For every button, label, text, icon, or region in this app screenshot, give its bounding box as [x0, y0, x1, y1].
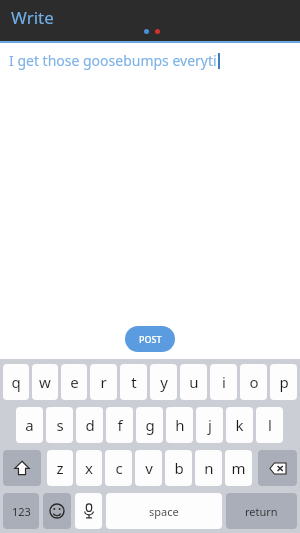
staticText: e — [70, 372, 79, 392]
staticText: o — [249, 372, 259, 392]
button[interactable]: o — [240, 364, 267, 400]
button[interactable]: POST — [125, 326, 175, 352]
button[interactable]: w — [32, 364, 58, 400]
button[interactable]: j — [196, 407, 223, 443]
staticText: r — [100, 372, 107, 392]
staticText: 123 — [12, 504, 31, 519]
staticText: b — [174, 458, 184, 478]
staticText: w — [39, 372, 51, 392]
button[interactable]: I get those goosebumps everyti — [9, 51, 300, 70]
staticText: h — [175, 415, 185, 435]
staticText: u — [189, 372, 199, 392]
button[interactable]: h — [166, 407, 193, 443]
button[interactable]: k — [226, 407, 253, 443]
button[interactable]: y — [150, 364, 177, 400]
button[interactable]: i — [210, 364, 237, 400]
button[interactable]: Backspace — [258, 450, 297, 486]
button[interactable]: t — [120, 364, 147, 400]
button[interactable]: m — [225, 450, 252, 486]
staticText: g — [145, 415, 155, 435]
staticText: POST — [139, 333, 162, 345]
staticText: d — [85, 415, 95, 435]
staticText: j — [208, 415, 212, 435]
button[interactable]: e — [61, 364, 87, 400]
button[interactable]: v — [135, 450, 162, 486]
staticText: t — [131, 372, 137, 392]
staticText: c — [115, 458, 123, 478]
staticText: z — [56, 458, 64, 478]
button[interactable]: g — [136, 407, 163, 443]
button[interactable]: b — [165, 450, 192, 486]
staticText: space — [149, 504, 179, 519]
staticText: p — [279, 372, 289, 392]
button[interactable]: r — [90, 364, 117, 400]
button[interactable]: p — [270, 364, 297, 400]
staticText: v — [145, 458, 153, 478]
button[interactable]: space — [106, 493, 222, 529]
button[interactable]: x — [76, 450, 102, 486]
staticText: s — [56, 415, 64, 435]
button[interactable]: z — [47, 450, 73, 486]
button[interactable]: n — [195, 450, 222, 486]
button[interactable]: f — [106, 407, 133, 443]
staticText: return — [245, 504, 278, 519]
staticText: n — [204, 458, 214, 478]
staticText: k — [235, 415, 244, 435]
button[interactable]: d — [76, 407, 103, 443]
staticText: I get those goosebumps everyti — [9, 51, 217, 70]
button[interactable]: Shift — [3, 450, 41, 486]
button[interactable]: s — [46, 407, 73, 443]
button[interactable]: l — [256, 407, 283, 443]
staticText: q — [11, 372, 21, 392]
staticText: Write — [11, 6, 54, 29]
button[interactable]: u — [180, 364, 207, 400]
staticText: i — [222, 372, 226, 392]
button[interactable]: q — [3, 364, 29, 400]
staticText: l — [268, 415, 272, 435]
button[interactable]: a — [16, 407, 43, 443]
button[interactable]: Emoji — [43, 493, 71, 529]
staticText: m — [231, 458, 246, 478]
button[interactable]: return — [226, 493, 297, 529]
staticText: y — [160, 372, 168, 392]
button[interactable]: c — [105, 450, 132, 486]
staticText: f — [117, 415, 123, 435]
staticText: a — [25, 415, 34, 435]
button[interactable]: 123 — [3, 493, 39, 529]
staticText: x — [85, 458, 93, 478]
button[interactable]: Voice input — [75, 493, 102, 529]
